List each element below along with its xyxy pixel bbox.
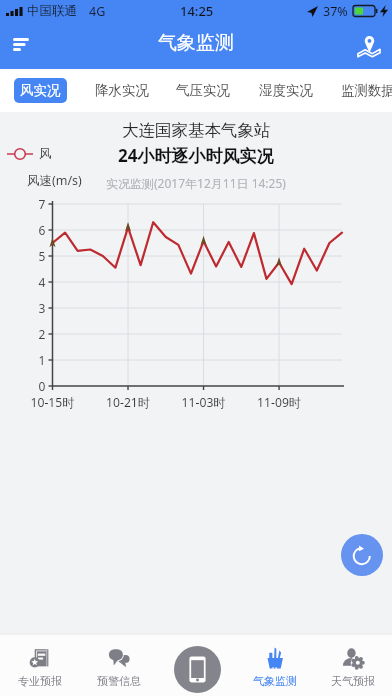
button[interactable]: 风实况 [14, 78, 67, 103]
staticText: 14:25 [180, 2, 214, 20]
staticText: 实况监测(2017年12月11日 14:25) [106, 175, 286, 190]
button[interactable]: 专业预报 [0, 634, 79, 696]
staticText: 气象监测 [253, 674, 297, 688]
staticText: 风 [39, 146, 52, 162]
staticText: 37% [323, 3, 348, 20]
button[interactable]: 预警信息 [79, 634, 158, 696]
button[interactable]: Refresh [341, 534, 383, 576]
button[interactable]: 降水实况 [94, 78, 150, 103]
button[interactable]: 气象监测 [236, 634, 314, 696]
button[interactable]: 监测数据 [340, 78, 392, 103]
staticText: 专业预报 [18, 674, 62, 688]
staticText: 风实况 [20, 82, 61, 99]
staticText: 监测数据 [341, 82, 392, 99]
button[interactable]: 天气预报 [314, 634, 392, 696]
staticText: 4G [89, 3, 106, 20]
button[interactable]: Menu [2, 25, 40, 63]
staticText: 降水实况 [95, 82, 149, 99]
staticText: 天气预报 [331, 674, 375, 688]
button[interactable]: 气压实况 [175, 78, 231, 103]
button[interactable]: Map [350, 26, 388, 64]
button[interactable]: Home [174, 646, 221, 693]
staticText: 风速(m/s) [27, 172, 82, 189]
staticText: 气象监测 [158, 31, 234, 55]
staticText: 24小时逐小时风实况 [118, 144, 274, 167]
staticText: 预警信息 [97, 674, 141, 688]
staticText: 湿度实况 [259, 82, 313, 99]
staticText: 中国联通 [27, 3, 77, 19]
staticText: 大连国家基本气象站 [122, 120, 271, 141]
button[interactable]: 湿度实况 [258, 78, 314, 103]
staticText: 气压实况 [176, 82, 230, 99]
